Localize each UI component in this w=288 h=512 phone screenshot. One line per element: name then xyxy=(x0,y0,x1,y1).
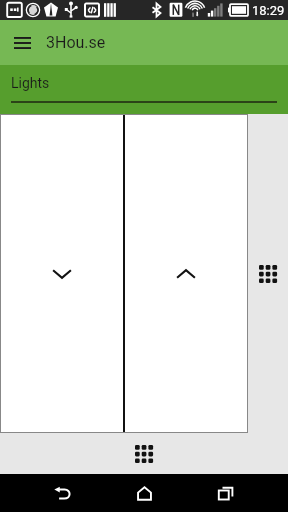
button[interactable]: Scenes xyxy=(128,438,160,470)
staticText: 3Hou.se xyxy=(46,33,106,52)
button[interactable]: Dim lights xyxy=(1,115,123,432)
button[interactable]: Recent apps xyxy=(206,474,246,512)
button[interactable]: Back xyxy=(42,474,82,512)
staticText: Lights xyxy=(11,75,50,91)
button[interactable]: All lights xyxy=(252,258,284,290)
button[interactable]: Home xyxy=(124,474,164,512)
staticText: 18:29 xyxy=(252,3,285,18)
button[interactable]: Brighten lights xyxy=(125,115,247,432)
button[interactable]: Lights xyxy=(0,65,277,114)
button[interactable]: Open navigation menu xyxy=(0,21,44,65)
